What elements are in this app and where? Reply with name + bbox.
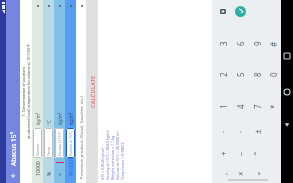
staticText: #	[268, 41, 279, 47]
button[interactable]: #	[265, 36, 281, 52]
button[interactable]: Volume at 15°C	[66, 128, 75, 158]
staticText: 2	[218, 72, 229, 77]
staticText: °C	[46, 120, 52, 125]
button[interactable]: 6	[232, 36, 248, 52]
button[interactable]: ±	[249, 124, 265, 140]
staticText: kg/m³	[35, 112, 41, 125]
staticText: ,	[218, 172, 229, 175]
button[interactable]: −	[232, 146, 248, 162]
staticText: ±	[252, 129, 263, 134]
button[interactable]: =	[54, 0, 65, 183]
staticText: Volume	[35, 143, 40, 156]
staticText: −	[235, 151, 246, 156]
button[interactable]: 4	[232, 99, 248, 115]
staticText: d15 = 0.8540 g/cm³ Density at 15°C = 854…	[100, 130, 125, 180]
button[interactable]: ×	[232, 166, 248, 182]
button[interactable]: *	[265, 99, 281, 115]
staticText: ⌃	[253, 150, 262, 157]
staticText: 7	[252, 104, 263, 109]
button[interactable]: Home	[281, 84, 293, 100]
button[interactable]: 90.0008	[65, 0, 76, 183]
button[interactable]: Enter	[232, 4, 248, 20]
button[interactable]: ·	[232, 124, 248, 140]
button[interactable]: ·	[215, 124, 231, 140]
staticText: *	[268, 104, 279, 109]
staticText: 8	[252, 72, 263, 77]
button[interactable]: Back	[281, 117, 293, 133]
button[interactable]: 5	[232, 67, 248, 83]
button[interactable]: ⌃	[249, 146, 265, 162]
staticText: ·	[218, 130, 229, 133]
button[interactable]: Petroleum products (Diesel, Gasoline, et…	[77, 0, 86, 183]
button[interactable]: CALCULATE	[86, 0, 98, 183]
staticText: %	[45, 171, 52, 176]
staticText: Density at 15°C	[57, 131, 62, 156]
button[interactable]: 1	[215, 99, 231, 115]
staticText: Temp	[46, 147, 51, 156]
button[interactable]: Density at 15°C	[55, 128, 64, 158]
button[interactable]: 8	[249, 67, 265, 83]
staticText: ×	[235, 171, 246, 176]
button[interactable]: Backspace	[215, 4, 231, 20]
staticText: 90.0008	[67, 156, 74, 176]
staticText: 9	[252, 41, 263, 46]
button[interactable]: ⌄	[249, 166, 265, 182]
button[interactable]: +	[215, 146, 231, 162]
button[interactable]: ,	[215, 166, 231, 182]
button[interactable]: 7	[249, 99, 265, 115]
staticText: 5	[235, 72, 246, 77]
staticText: 1	[218, 104, 229, 109]
button[interactable]: 3	[215, 36, 231, 52]
staticText: 10000	[34, 161, 41, 176]
staticText: CALCULATE	[89, 75, 96, 108]
staticText: 3	[218, 41, 229, 46]
button[interactable]: Navigate up	[6, 169, 20, 183]
button[interactable]: Volume	[33, 128, 42, 158]
staticText: Petroleum products (Diesel, Gasoline, et…	[79, 95, 85, 179]
staticText: 4	[235, 104, 246, 109]
staticText: Abacus 15°	[9, 131, 18, 166]
staticText: 1. Concentration of solutions at observe…	[21, 12, 31, 171]
staticText: kg/m³	[68, 112, 74, 125]
button[interactable]: 10000	[32, 0, 43, 183]
button[interactable]: 0	[265, 67, 281, 83]
staticText: ·	[235, 130, 246, 133]
button[interactable]: Recent apps	[281, 48, 293, 64]
staticText: =	[56, 173, 63, 176]
staticText: kg/m³	[57, 112, 63, 125]
button[interactable]: 9	[249, 36, 265, 52]
staticText: 0	[268, 72, 279, 77]
staticText: Volume at 15°C	[68, 131, 73, 156]
button[interactable]: %	[43, 0, 54, 183]
staticText: ⌄	[253, 170, 262, 177]
button[interactable]: 2	[215, 67, 231, 83]
staticText: 6	[235, 41, 246, 46]
staticText: +	[218, 151, 229, 156]
button[interactable]: Temp	[44, 128, 53, 158]
